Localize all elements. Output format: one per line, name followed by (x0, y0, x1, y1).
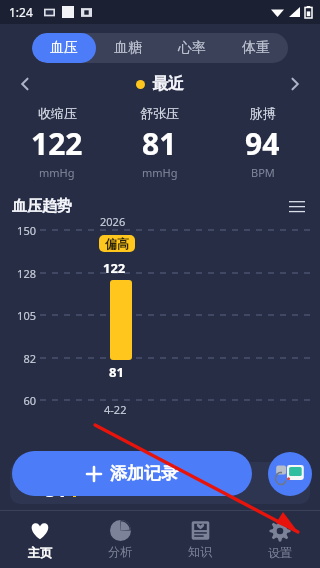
button[interactable]: 血压 (32, 33, 96, 63)
button[interactable]: 知识 (160, 511, 240, 568)
button[interactable]: 添加记录 (12, 451, 252, 496)
staticText: 知识 (188, 544, 212, 559)
staticText: 1:24 (9, 4, 33, 20)
staticText: 分析 (108, 544, 132, 559)
staticText: 血压趋势 (12, 197, 72, 216)
staticText: 心率 (178, 39, 206, 57)
staticText: 添加记录 (110, 463, 178, 484)
staticText: 最近 (152, 74, 184, 94)
staticText: 81 (142, 123, 177, 164)
staticText: mmHg (142, 165, 178, 180)
staticText: 体重 (242, 39, 270, 57)
staticText: 105 (4, 308, 36, 323)
staticText: 2026 (100, 214, 126, 229)
button[interactable]: Next (280, 69, 310, 99)
staticText: 122 (31, 123, 83, 164)
button[interactable]: 设置 (240, 511, 320, 568)
staticText: 60 (4, 393, 36, 408)
staticText: 81 (44, 476, 67, 503)
button[interactable]: Previous (10, 69, 40, 99)
button[interactable]: 主页 (0, 511, 80, 568)
staticText: 收缩压 (38, 105, 77, 121)
staticText: 128 (4, 266, 36, 281)
button[interactable]: 81 (10, 462, 310, 504)
staticText: 舒张压 (140, 105, 179, 121)
staticText: 4月22日, 13:24, 94 BPM (84, 482, 204, 497)
staticText: mmHg (39, 165, 75, 180)
button[interactable]: 体重 (224, 33, 288, 63)
staticText: 血糖 (114, 39, 142, 57)
staticText: 脉搏 (250, 105, 276, 121)
staticText: 150 (4, 223, 36, 238)
button[interactable]: 血糖 (96, 33, 160, 63)
staticText: 偏高 (105, 236, 129, 251)
button[interactable]: Connect device (268, 452, 312, 496)
staticText: 4-22 (104, 402, 127, 417)
staticText: 主页 (28, 545, 52, 560)
staticText: 82 (4, 351, 36, 366)
staticText: 94 (245, 123, 280, 164)
staticText: 设置 (268, 545, 292, 560)
staticText: 血压 (50, 39, 78, 57)
staticText: 81 (109, 363, 124, 381)
staticText: 122 (103, 259, 126, 277)
button[interactable]: 心率 (160, 33, 224, 63)
button[interactable]: Menu (284, 194, 310, 218)
button[interactable]: 分析 (80, 511, 160, 568)
staticText: BPM (251, 165, 275, 180)
